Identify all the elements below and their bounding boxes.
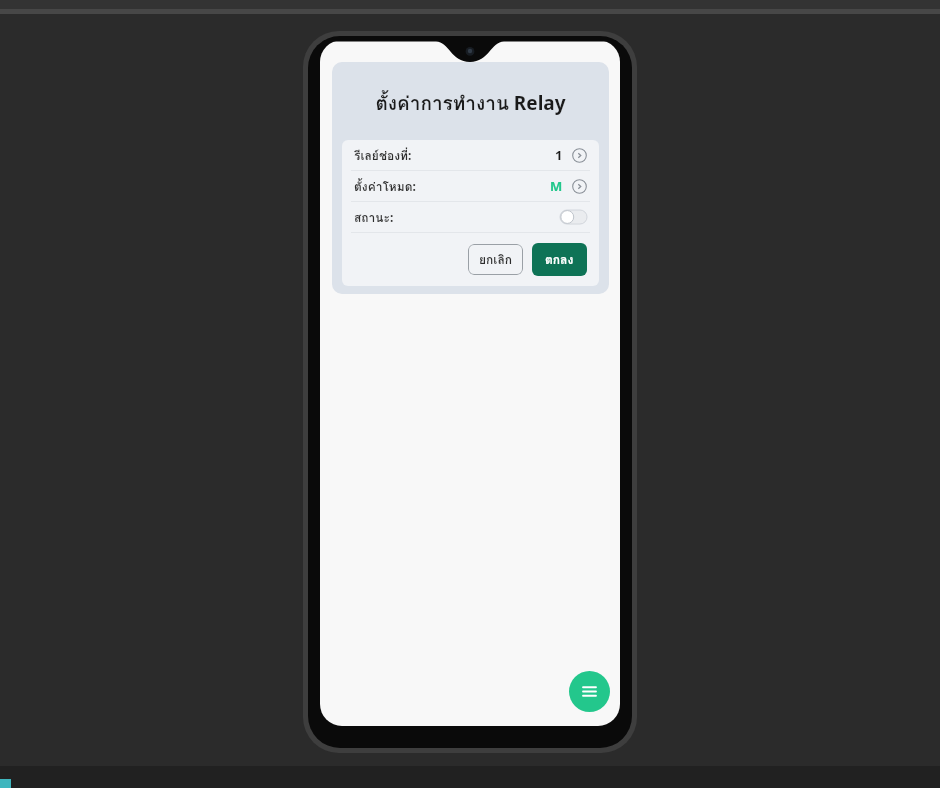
staticText: ตั้งค่าโหมด: bbox=[354, 177, 416, 196]
staticText: รีเลย์ช่องที่: bbox=[354, 146, 412, 165]
button[interactable]: ยกเลิก bbox=[468, 244, 523, 275]
staticText: ตกลง bbox=[545, 250, 574, 269]
button[interactable]: ตั้งค่าโหมด: bbox=[342, 171, 599, 201]
staticText: สถานะ: bbox=[354, 208, 394, 227]
button[interactable]: ตกลง bbox=[532, 243, 587, 276]
button[interactable]: รีเลย์ช่องที่: bbox=[342, 140, 599, 170]
button[interactable]: Menu bbox=[569, 671, 610, 712]
staticText: ตั้งค่าการทำงาน Relay bbox=[342, 88, 599, 118]
staticText: M bbox=[550, 177, 563, 195]
button[interactable]: สถานะ: bbox=[342, 202, 599, 232]
button[interactable]: Status toggle bbox=[560, 210, 587, 224]
staticText: 1 bbox=[555, 146, 563, 164]
staticText: ยกเลิก bbox=[479, 250, 512, 269]
